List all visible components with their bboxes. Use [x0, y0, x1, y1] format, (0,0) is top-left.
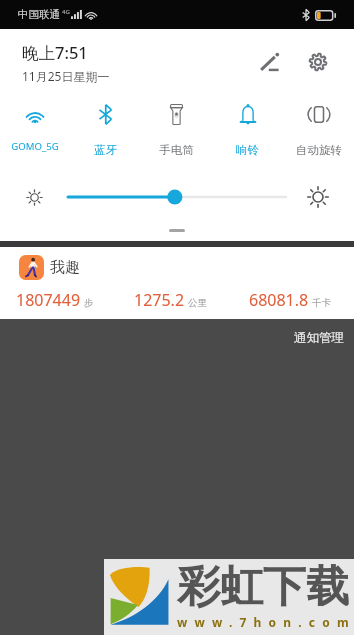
staticText: 11月25日星期一	[22, 68, 110, 84]
button[interactable]: GOMO_5G	[0, 95, 70, 168]
staticText: 蓝牙	[94, 143, 117, 157]
staticText: 1275.2	[134, 289, 185, 311]
staticText: 4G	[62, 8, 70, 16]
button[interactable]: Settings	[294, 38, 342, 86]
staticText: 1807449	[16, 289, 81, 311]
staticText: GOMO_5G	[11, 140, 59, 153]
button[interactable]: Edit quick settings	[245, 38, 293, 86]
button[interactable]: 响铃	[212, 95, 283, 168]
button[interactable]: 我趣	[0, 247, 354, 319]
staticText: 公里	[188, 297, 207, 309]
staticText: 步	[84, 297, 94, 309]
staticText: 千卡	[312, 297, 331, 309]
staticText: 晚上7:51	[22, 41, 88, 64]
button[interactable]: 手电筒	[141, 95, 212, 168]
button[interactable]: 蓝牙	[70, 95, 141, 168]
staticText: www.7hon.com	[177, 614, 354, 630]
staticText: 自动旋转	[296, 143, 342, 157]
staticText: 68081.8	[249, 289, 309, 311]
staticText: 我趣	[50, 258, 80, 277]
staticText: 响铃	[236, 143, 259, 157]
button[interactable]: 通知管理	[278, 322, 354, 354]
staticText: 中国联通	[18, 8, 60, 21]
staticText: 手电筒	[159, 143, 194, 157]
button[interactable]: 自动旋转	[283, 95, 354, 168]
staticText: 彩虹下载	[177, 560, 349, 614]
staticText: 通知管理	[294, 330, 344, 346]
